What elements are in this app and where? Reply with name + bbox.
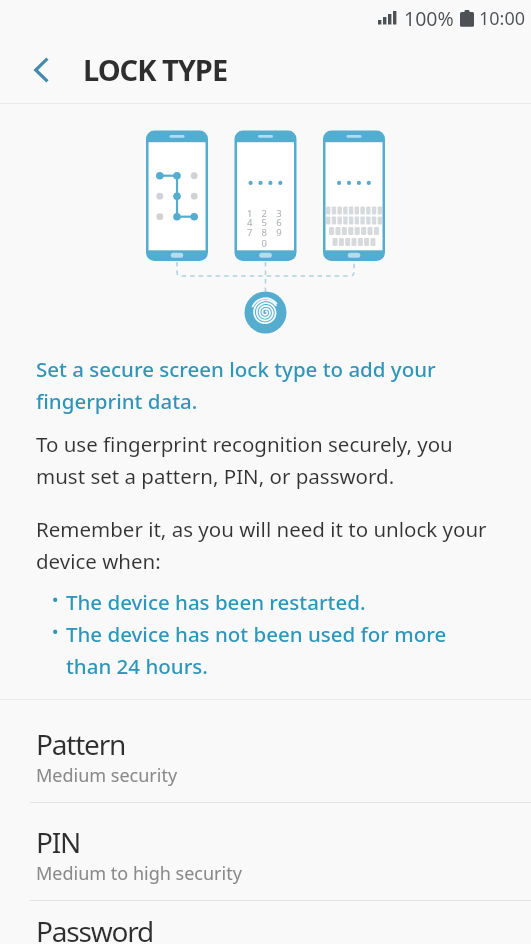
staticText: To use fingerprint recognition securely,…: [36, 430, 453, 490]
staticText: Password: [36, 912, 154, 944]
staticText: Set a secure screen lock type to add you…: [36, 355, 436, 415]
staticText: LOCK TYPE: [83, 50, 228, 89]
staticText: The device has been restarted.: [66, 588, 366, 616]
staticText: 0: [234, 237, 298, 250]
staticText: 100%: [404, 5, 454, 32]
button[interactable]: Password: [0, 901, 531, 944]
staticText: •: [52, 588, 59, 611]
staticText: The device has not been used for more th…: [66, 620, 447, 680]
staticText: 7 8 9: [234, 226, 298, 239]
staticText: Medium security: [36, 763, 178, 788]
button[interactable]: [19, 48, 63, 92]
staticText: 1 2 3: [234, 207, 298, 220]
button[interactable]: Pattern: [0, 700, 531, 802]
staticText: Remember it, as you will need it to unlo…: [36, 515, 487, 575]
staticText: Pattern: [36, 725, 126, 763]
button[interactable]: PIN: [0, 803, 531, 900]
staticText: 4 5 6: [234, 216, 298, 229]
staticText: 10:00: [479, 6, 526, 31]
staticText: •: [52, 620, 59, 643]
staticText: PIN: [36, 823, 81, 861]
staticText: Medium to high security: [36, 861, 242, 886]
